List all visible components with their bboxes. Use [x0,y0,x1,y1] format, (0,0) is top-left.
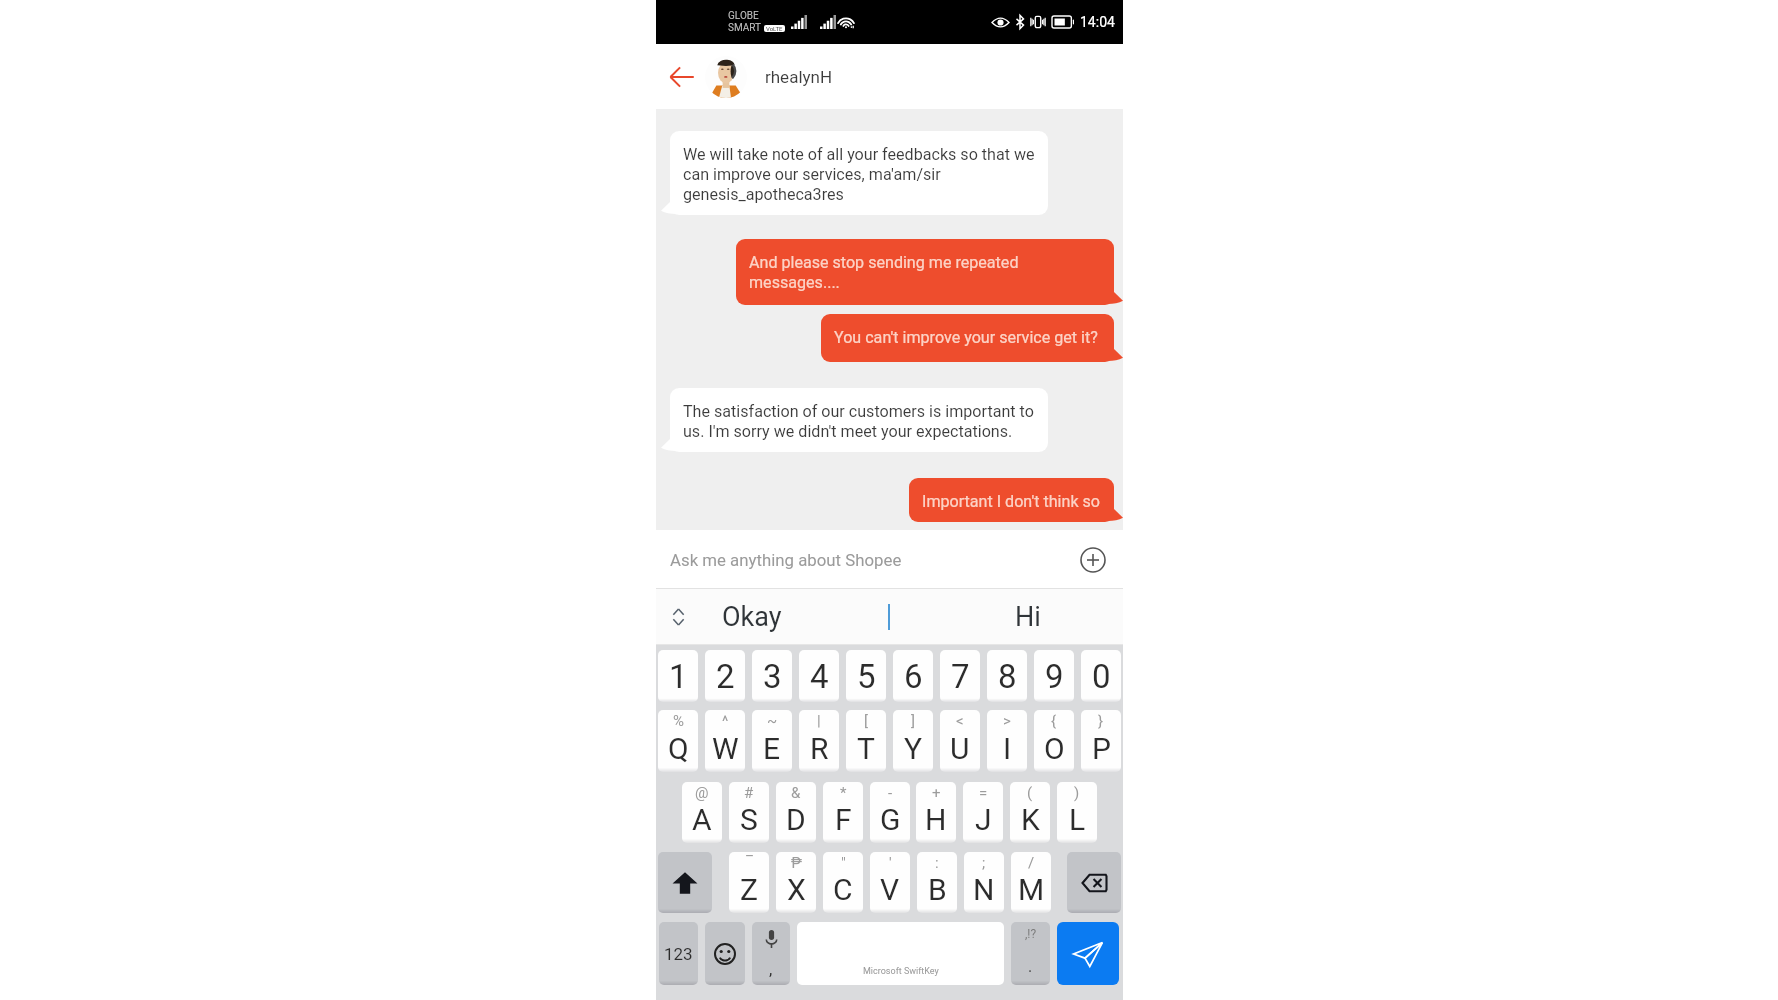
staticText: And please stop sending me repeated mess… [749,253,1019,292]
staticText: [ [864,712,868,730]
staticText: SMART [728,22,762,34]
button[interactable]: ₱ [776,852,816,913]
button[interactable]: 8 [987,650,1027,702]
staticText: 5 [857,657,876,696]
staticText: D [786,802,806,837]
staticText: E [763,731,781,766]
button[interactable]: / [1011,852,1051,913]
button[interactable]: ] [893,710,933,772]
button[interactable]: Voice input [752,922,790,985]
button[interactable]: : [917,852,957,913]
button[interactable]: ) [1057,782,1097,843]
button[interactable]: Punctuation [1011,922,1050,985]
other: Voice input [752,922,790,985]
staticText: X [787,872,806,907]
button[interactable]: " [823,852,863,913]
staticText: > [1003,712,1011,730]
button[interactable]: 7 [940,650,980,702]
button[interactable]: Backspace [1067,852,1121,913]
staticText: You can't improve your service get it? [834,328,1098,347]
staticText: % [673,712,684,730]
staticText: = [979,784,988,802]
button[interactable]: Send [1057,922,1119,985]
staticText: C [833,872,853,907]
button[interactable]: The satisfaction of our customers is imp… [670,388,1048,452]
button[interactable]: 123 [659,922,698,985]
staticText: W [712,731,739,766]
button[interactable]: ' [870,852,910,913]
button[interactable]: * [823,782,863,843]
button[interactable]: - [870,782,910,843]
staticText: 6 [904,657,923,696]
staticText: @ [695,784,709,802]
button[interactable]: Hi [978,589,1078,645]
button[interactable]: & [776,782,816,843]
staticText: 14:04 [1080,14,1115,30]
staticText: O [1044,731,1065,766]
button[interactable]: = [963,782,1003,843]
button[interactable]: 3 [752,650,792,702]
staticText: " [841,854,846,872]
staticText: ] [911,712,915,730]
staticText: - [888,784,893,802]
button[interactable]: Important I don't think so [909,478,1114,522]
button[interactable]: 1 [658,650,698,702]
staticText: < [956,712,964,730]
button[interactable]: And please stop sending me repeated mess… [736,239,1114,305]
button[interactable]: Expand suggestions [664,589,692,645]
staticText: 4 [810,657,829,696]
staticText: 7 [951,657,970,696]
staticText: : [935,854,939,872]
button[interactable]: ^ [705,710,745,772]
button[interactable]: ( [1010,782,1050,843]
button[interactable]: 2 [705,650,745,702]
staticText: K [1021,802,1040,837]
staticText: I [1003,731,1012,766]
staticText: Hi [1015,601,1041,633]
button[interactable]: You can't improve your service get it? [821,314,1114,362]
staticText: # [744,784,754,802]
staticText: F [835,802,852,837]
button[interactable]: Back [662,57,702,97]
button[interactable]: % [658,710,698,772]
staticText: 3 [763,657,782,696]
button[interactable]: < [940,710,980,772]
staticText: S [740,802,758,837]
staticText: { [1051,712,1057,730]
staticText: Z [740,872,758,907]
button[interactable]: # [729,782,769,843]
button[interactable]: > [987,710,1027,772]
button[interactable]: Shift [658,852,712,913]
button[interactable]: 6 [893,650,933,702]
button[interactable]: { [1034,710,1074,772]
button[interactable]: Okay [704,589,800,645]
button[interactable]: 5 [846,650,886,702]
staticText: ,!? [1025,927,1037,941]
button[interactable]: ~ [752,710,792,772]
staticText: T [857,731,875,766]
staticText: ) [1074,784,1080,802]
staticText: M [1018,872,1045,907]
button[interactable]: 9 [1034,650,1074,702]
button[interactable]: 4 [799,650,839,702]
button[interactable]: ; [964,852,1004,913]
staticText: ' [889,854,892,872]
button[interactable]: Emoji [705,922,745,985]
button[interactable]: We will take note of all your feedbacks … [670,131,1048,215]
button[interactable]: [ [846,710,886,772]
staticText: ^ [722,712,729,730]
staticText: Microsoft SwiftKey [863,966,939,977]
button[interactable]: @ [682,782,722,843]
staticText: Y [904,731,923,766]
other: Shift [658,852,712,913]
button[interactable]: ‾ [729,852,769,913]
button[interactable]: } [1081,710,1121,772]
button[interactable]: Add attachment [1077,544,1109,576]
button[interactable]: Microsoft SwiftKey [797,922,1004,985]
staticText: We will take note of all your feedbacks … [683,145,1035,204]
button[interactable]: 0 [1081,650,1121,702]
button[interactable]: + [916,782,956,843]
button[interactable]: | [799,710,839,772]
staticText: Ask me anything about Shopee [670,550,1077,570]
staticText: VoLTE [766,25,783,32]
